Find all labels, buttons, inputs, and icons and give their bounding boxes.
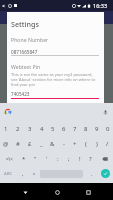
button[interactable]: ( — [80, 136, 91, 151]
button[interactable]: 0 — [102, 121, 113, 136]
staticText: # — [16, 140, 20, 148]
button[interactable]: , — [16, 166, 30, 181]
button[interactable]: Voice input — [99, 103, 111, 121]
staticText: ABC — [4, 171, 13, 177]
button[interactable]: 2 — [12, 121, 24, 136]
button[interactable]: - — [58, 136, 69, 151]
button[interactable]: Backspace — [96, 151, 113, 166]
button[interactable]: ; — [63, 151, 74, 166]
button[interactable]: Home — [50, 185, 64, 199]
button[interactable]: * — [18, 151, 30, 166]
staticText: 7 — [73, 125, 77, 133]
button[interactable]: _ — [36, 136, 47, 151]
staticText: - — [63, 140, 65, 148]
button[interactable]: : — [52, 151, 63, 166]
button[interactable]: Emoji — [29, 166, 39, 181]
staticText: 6 — [62, 125, 66, 133]
staticText: 5 — [51, 125, 55, 133]
staticText: Settings — [11, 19, 39, 29]
button[interactable]: 7 — [69, 121, 80, 136]
staticText: @ — [3, 140, 9, 148]
staticText: ? — [89, 155, 92, 163]
button[interactable]: ' — [41, 151, 52, 166]
staticText: 16:33 — [93, 2, 108, 9]
button[interactable]: ABC — [0, 166, 16, 181]
staticText: 3 — [28, 125, 32, 133]
button[interactable]: # — [12, 136, 24, 151]
staticText: " — [34, 155, 37, 163]
staticText: 8 — [84, 125, 88, 133]
staticText: , — [22, 170, 24, 177]
staticText: 1 — [4, 125, 8, 133]
button[interactable]: 9 — [91, 121, 102, 136]
button[interactable]: £ — [24, 136, 36, 151]
button[interactable]: ) — [91, 136, 102, 151]
button[interactable]: 6 — [58, 121, 69, 136]
button[interactable]: ! — [74, 151, 85, 166]
button[interactable]: + — [69, 136, 80, 151]
staticText: ; — [68, 155, 70, 163]
staticText: ( — [85, 140, 87, 148]
button[interactable]: & — [47, 136, 58, 151]
button[interactable]: Close keyboard — [18, 185, 32, 199]
staticText: 7405423 — [11, 91, 30, 97]
button[interactable]: Enter — [98, 166, 112, 181]
staticText: Phone Number — [11, 36, 49, 43]
button[interactable]: " — [30, 151, 41, 166]
staticText: Webtext Pin — [11, 63, 41, 70]
button[interactable]: @ — [0, 136, 12, 151]
button[interactable]: 3 — [24, 121, 36, 136]
staticText: ' — [46, 155, 48, 163]
staticText: 0 — [106, 125, 110, 133]
staticText: . — [91, 170, 93, 177]
staticText: 2 — [16, 125, 20, 133]
staticText: + — [73, 140, 77, 148]
button[interactable]: Recent apps — [81, 185, 95, 199]
staticText: : — [57, 155, 59, 163]
button[interactable]: ? — [85, 151, 96, 166]
staticText: * — [22, 155, 26, 163]
staticText: 0871665847 — [11, 49, 38, 55]
staticText: ! — [79, 155, 81, 163]
button[interactable]: . — [85, 166, 99, 181]
button[interactable]: Google search — [2, 103, 14, 121]
staticText: 9 — [95, 125, 99, 133]
staticText: & — [50, 140, 55, 148]
staticText: £ — [28, 140, 32, 148]
button[interactable]: =\< — [0, 151, 18, 166]
button[interactable]: 1 — [0, 121, 12, 136]
staticText: This is not the same as your my3 passwor… — [11, 72, 97, 87]
staticText: / — [106, 140, 109, 148]
button[interactable]: 4 — [36, 121, 47, 136]
staticText: _ — [40, 140, 43, 148]
staticText: =\< — [6, 156, 13, 162]
button[interactable]: 8 — [80, 121, 91, 136]
button[interactable]: 5 — [47, 121, 58, 136]
staticText: 4 — [40, 125, 44, 133]
staticText: ) — [96, 140, 98, 148]
button[interactable]: / — [102, 136, 113, 151]
